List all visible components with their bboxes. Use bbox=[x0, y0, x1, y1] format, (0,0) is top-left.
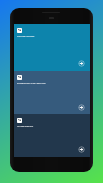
button[interactable]: Open bbox=[78, 104, 85, 111]
staticText: CONTROL PANELES bbox=[17, 35, 35, 37]
staticText: MANTENIMIENTO bbox=[17, 125, 34, 127]
staticText: INFORMACION PARA TECNICOS bbox=[17, 82, 46, 84]
button[interactable]: CONTROL PANELES bbox=[14, 24, 90, 71]
button[interactable]: INFORMACION PARA TECNICOS bbox=[14, 71, 90, 114]
button[interactable]: Open bbox=[78, 60, 85, 67]
button[interactable]: Open bbox=[78, 146, 85, 153]
button[interactable]: MANTENIMIENTO bbox=[14, 114, 90, 157]
